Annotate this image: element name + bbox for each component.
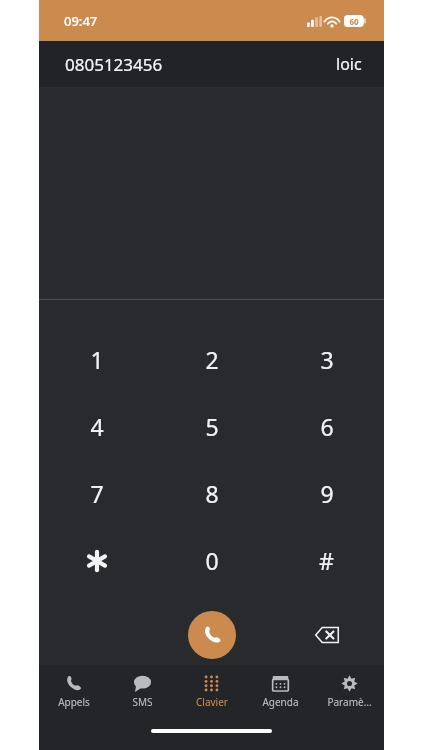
button[interactable]: loic: [336, 53, 362, 75]
staticText: Clavier: [196, 695, 228, 709]
button[interactable]: #: [269, 527, 384, 594]
staticText: 0: [205, 545, 219, 576]
button[interactable]: 9: [269, 460, 384, 527]
button[interactable]: 6: [269, 393, 384, 460]
staticText: 9: [320, 478, 334, 509]
button[interactable]: 7: [39, 460, 154, 527]
button[interactable]: 5: [154, 393, 269, 460]
staticText: 3: [320, 344, 334, 375]
button[interactable]: SMS: [108, 665, 177, 719]
staticText: 1: [90, 344, 104, 375]
staticText: 60: [349, 16, 359, 27]
button[interactable]: 3: [269, 326, 384, 393]
staticText: 4: [90, 411, 104, 442]
button[interactable]: 1: [39, 326, 154, 393]
button[interactable]: Paramè…: [315, 665, 384, 719]
staticText: 2: [205, 344, 219, 375]
staticText: Paramè…: [327, 695, 372, 709]
staticText: 7: [90, 478, 104, 509]
button[interactable]: [39, 527, 154, 594]
staticText: 8: [205, 478, 219, 509]
button[interactable]: 4: [39, 393, 154, 460]
button[interactable]: Backspace: [309, 617, 345, 653]
button[interactable]: Appels: [39, 665, 108, 719]
button[interactable]: Agenda: [246, 665, 315, 719]
button[interactable]: Clavier: [177, 665, 246, 719]
button[interactable]: Call: [188, 611, 236, 659]
staticText: 6: [320, 411, 334, 442]
staticText: Agenda: [262, 695, 299, 709]
button[interactable]: 0: [154, 527, 269, 594]
staticText: 5: [205, 411, 219, 442]
staticText: SMS: [132, 695, 153, 709]
staticText: #: [319, 545, 334, 576]
staticText: 09:47: [64, 12, 98, 30]
button[interactable]: 2: [154, 326, 269, 393]
staticText: Appels: [58, 695, 90, 709]
button[interactable]: 8: [154, 460, 269, 527]
staticText: 0805123456: [65, 53, 163, 76]
